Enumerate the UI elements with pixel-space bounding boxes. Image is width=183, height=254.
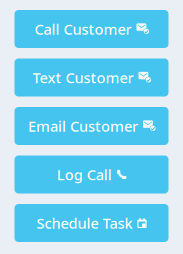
staticText: Email Customer [28, 116, 138, 136]
staticText: Log Call [57, 165, 112, 184]
staticText: Call Customer [34, 19, 131, 39]
staticText: Schedule Task [36, 213, 132, 233]
staticText: Text Customer [32, 68, 133, 87]
button[interactable]: Log Call [14, 155, 168, 193]
button[interactable]: Schedule Task [14, 204, 168, 242]
button[interactable]: Call Customer [14, 10, 168, 48]
button[interactable]: Email Customer [14, 107, 168, 145]
button[interactable]: Text Customer [14, 58, 168, 96]
